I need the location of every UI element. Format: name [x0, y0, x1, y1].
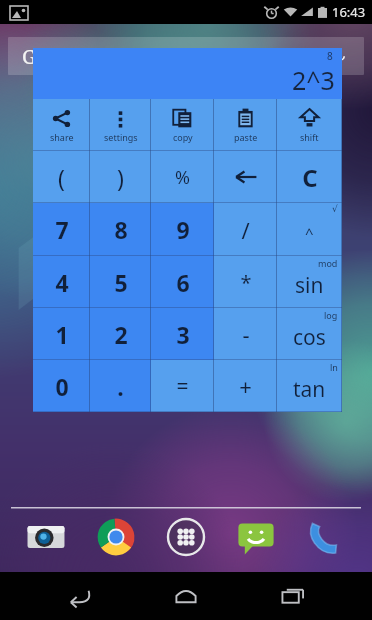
staticText: 2^3	[292, 63, 335, 97]
button[interactable]: shift	[277, 99, 342, 151]
button[interactable]: +	[214, 360, 277, 412]
button[interactable]: 3	[151, 308, 214, 360]
staticText: (	[58, 162, 65, 193]
button[interactable]: Home	[158, 572, 214, 620]
staticText: C	[302, 161, 318, 194]
button[interactable]: 2	[90, 308, 151, 360]
button[interactable]: Messaging	[232, 513, 280, 561]
button[interactable]: share	[33, 99, 90, 151]
staticText: 5	[114, 267, 128, 298]
button[interactable]: C	[277, 151, 342, 203]
staticText: =	[176, 372, 189, 401]
button[interactable]: paste	[214, 99, 277, 151]
button[interactable]: Chrome	[92, 513, 140, 561]
button[interactable]: (	[33, 151, 90, 203]
button[interactable]: Backspace	[214, 151, 277, 203]
button[interactable]: 9	[151, 203, 214, 256]
button[interactable]: 7	[33, 203, 90, 256]
staticText: 0	[55, 371, 69, 402]
staticText: -	[242, 319, 250, 349]
staticText: +	[239, 371, 252, 401]
button[interactable]: 2^3	[33, 48, 342, 99]
staticText: 8	[327, 49, 333, 63]
staticText: 2	[114, 319, 128, 350]
staticText: cos	[293, 323, 326, 352]
button[interactable]: Back	[51, 572, 107, 620]
button[interactable]: Camera	[22, 513, 70, 561]
staticText: 1	[55, 319, 69, 350]
staticText: paste	[234, 131, 258, 143]
staticText: 4	[55, 267, 69, 298]
staticText: sin	[295, 271, 324, 300]
staticText: )	[117, 162, 124, 193]
button[interactable]: %	[151, 151, 214, 203]
button[interactable]: 6	[151, 256, 214, 308]
button[interactable]: mod	[277, 256, 342, 308]
button[interactable]: 0	[33, 360, 90, 412]
staticText: settings	[104, 131, 138, 143]
staticText: 9	[176, 214, 190, 245]
button[interactable]: log	[277, 308, 342, 360]
button[interactable]: √	[277, 203, 342, 256]
button[interactable]: 4	[33, 256, 90, 308]
staticText: log	[324, 309, 338, 321]
staticText: 16:43	[332, 3, 366, 21]
staticText: 6	[176, 267, 190, 298]
staticText: 8	[114, 214, 128, 245]
staticText: 3	[176, 319, 190, 350]
staticText: /	[241, 215, 250, 245]
button[interactable]: .	[90, 360, 151, 412]
staticText: copy	[173, 131, 193, 143]
button[interactable]: settings	[90, 99, 151, 151]
staticText: .	[117, 371, 124, 402]
button[interactable]: Recents	[265, 572, 321, 620]
button[interactable]: 5	[90, 256, 151, 308]
staticText: shift	[300, 131, 319, 143]
staticText: tan	[293, 375, 326, 404]
staticText: Google	[22, 43, 88, 70]
staticText: mod	[318, 257, 338, 269]
button[interactable]: 1	[33, 308, 90, 360]
staticText: ln	[330, 361, 338, 373]
staticText: √	[332, 204, 338, 214]
button[interactable]: Phone	[302, 513, 350, 561]
button[interactable]: Apps	[162, 513, 210, 561]
button[interactable]: Google	[8, 37, 364, 75]
staticText: ^	[305, 223, 314, 243]
staticText: *	[240, 269, 252, 296]
button[interactable]: 8	[90, 203, 151, 256]
button[interactable]: ln	[277, 360, 342, 412]
button[interactable]: =	[151, 360, 214, 412]
button[interactable]: )	[90, 151, 151, 203]
staticText: share	[50, 131, 74, 143]
staticText: 7	[55, 214, 69, 245]
button[interactable]: *	[214, 256, 277, 308]
button[interactable]: Voice search	[326, 43, 352, 69]
button[interactable]: copy	[151, 99, 214, 151]
button[interactable]: /	[214, 203, 277, 256]
button[interactable]: -	[214, 308, 277, 360]
staticText: %	[175, 165, 190, 190]
